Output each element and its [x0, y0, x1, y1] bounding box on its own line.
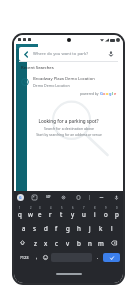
staticText: G — [100, 91, 103, 96]
staticText: i — [94, 210, 96, 218]
staticText: d — [44, 224, 48, 232]
button[interactable]: 4 — [46, 203, 55, 220]
staticText: p — [115, 210, 119, 218]
button[interactable]: Emoji — [42, 251, 49, 264]
button[interactable]: 9 — [101, 203, 110, 220]
button[interactable]: z — [31, 235, 39, 250]
button[interactable]: v — [63, 235, 72, 250]
staticText: e — [114, 91, 117, 96]
button[interactable]: 0 — [112, 203, 121, 220]
staticText: f — [55, 224, 58, 232]
staticText: Search for a destination above — [44, 126, 94, 131]
button[interactable]: ?123 — [17, 251, 31, 264]
button[interactable]: More options — [97, 193, 105, 201]
staticText: o — [104, 210, 108, 218]
button[interactable]: Settings — [59, 193, 67, 201]
staticText: s — [33, 224, 36, 232]
staticText: Where do you want to park? — [33, 51, 107, 57]
button[interactable]: Broadway Plaza Demo Location — [14, 74, 123, 89]
staticText: 8 — [94, 206, 96, 210]
button[interactable]: 8 — [90, 203, 99, 220]
staticText: Start by searching for an address or ven… — [36, 132, 102, 136]
staticText: y — [71, 210, 75, 218]
button[interactable]: Back — [22, 50, 30, 58]
staticText: 7 — [83, 206, 85, 210]
button[interactable]: , — [33, 251, 40, 264]
button[interactable]: Voice input — [112, 193, 120, 201]
button[interactable]: d — [41, 220, 50, 235]
staticText: z — [34, 239, 37, 247]
staticText: 0 — [116, 206, 118, 210]
button[interactable]: k — [96, 220, 105, 235]
staticText: l — [111, 224, 113, 232]
button[interactable]: s — [30, 220, 39, 235]
button[interactable]: 6 — [68, 203, 77, 220]
staticText: o — [106, 91, 109, 96]
button[interactable]: n — [85, 235, 94, 250]
button[interactable]: x — [41, 235, 50, 250]
button[interactable]: GIF — [44, 193, 52, 201]
staticText: 5 — [61, 206, 63, 210]
staticText: . — [97, 254, 99, 261]
staticText: , — [36, 254, 38, 261]
staticText: Broadway Plaza Demo Location — [33, 76, 95, 82]
button[interactable]: Enter — [103, 253, 120, 262]
button[interactable]: g — [63, 220, 72, 235]
button[interactable]: Backspace — [107, 235, 121, 250]
staticText: GIF — [46, 195, 51, 199]
button[interactable]: Shift — [16, 235, 29, 250]
staticText: 3 — [39, 206, 41, 210]
button[interactable]: f — [52, 220, 61, 235]
button[interactable]: h — [74, 220, 83, 235]
staticText: h — [77, 224, 81, 232]
button[interactable]: . — [94, 251, 101, 264]
button[interactable]: Stickers — [30, 193, 38, 201]
button[interactable]: Back — [19, 47, 118, 61]
button[interactable]: 5 — [57, 203, 66, 220]
staticText: 1 — [19, 206, 21, 210]
staticText: c — [55, 239, 58, 247]
button[interactable]: b — [74, 235, 83, 250]
staticText: 9 — [105, 206, 107, 210]
staticText: powered by — [80, 91, 100, 96]
button[interactable]: 7 — [79, 203, 88, 220]
staticText: o — [103, 91, 106, 96]
button[interactable]: Google — [17, 194, 24, 201]
staticText: w — [28, 210, 33, 218]
staticText: g — [109, 91, 112, 96]
staticText: ?123 — [20, 255, 29, 260]
button[interactable]: 3 — [36, 203, 44, 220]
staticText: l — [112, 91, 114, 96]
button[interactable]: m — [96, 235, 105, 250]
staticText: a — [22, 224, 26, 232]
button[interactable]: c — [52, 235, 61, 250]
button[interactable]: l — [107, 220, 116, 235]
staticText: 2 — [30, 206, 32, 210]
staticText: x — [44, 239, 48, 247]
staticText: Looking for a parking spot? — [38, 118, 99, 124]
staticText: u — [82, 210, 86, 218]
staticText: Recent Searches — [21, 65, 54, 71]
staticText: k — [99, 224, 103, 232]
button[interactable]: 2 — [26, 203, 34, 220]
staticText: 4 — [50, 206, 52, 210]
staticText: e — [38, 210, 42, 218]
staticText: v — [66, 239, 70, 247]
button[interactable]: Clipboard — [74, 193, 82, 201]
staticText: 6 — [72, 206, 74, 210]
button[interactable]: j — [85, 220, 94, 235]
staticText: r — [49, 210, 52, 218]
staticText: G — [19, 195, 22, 200]
staticText: m — [98, 239, 104, 247]
staticText: j — [89, 224, 91, 232]
staticText: b — [77, 239, 81, 247]
button[interactable]: Voice search — [107, 50, 115, 58]
staticText: q — [18, 210, 22, 218]
button[interactable]: a — [20, 220, 28, 235]
staticText: n — [88, 239, 92, 247]
staticText: g — [66, 224, 70, 232]
staticText: Demo Demo Location — [33, 83, 70, 88]
staticText: t — [60, 210, 63, 218]
button[interactable]: 1 — [16, 203, 24, 220]
